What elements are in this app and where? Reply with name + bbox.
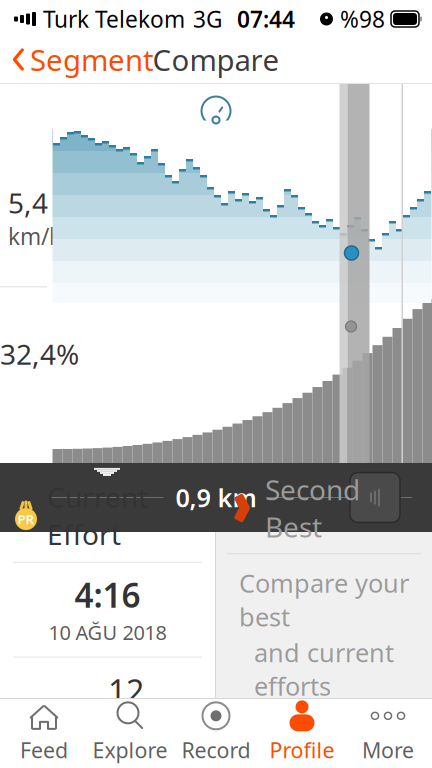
staticText: Feed — [20, 736, 68, 764]
staticText: 3G — [193, 4, 223, 34]
button[interactable]: Segment — [0, 32, 154, 87]
staticText: bpm — [41, 705, 87, 733]
staticText: 4:16 — [74, 573, 140, 617]
staticText: Explore — [92, 736, 167, 764]
staticText: 32,4% — [0, 335, 79, 372]
staticText: 5,4 — [8, 184, 48, 221]
staticText: More — [362, 736, 414, 764]
button[interactable]: Explore — [87, 699, 173, 766]
staticText: 07:44 — [237, 4, 295, 34]
button[interactable]: More — [345, 699, 431, 766]
staticText: km/h — [8, 221, 63, 251]
staticText: km/h — [154, 698, 193, 755]
staticText: Turk Telekom — [43, 4, 185, 34]
button[interactable]: PR — [0, 532, 215, 698]
staticText: Compare — [152, 40, 279, 79]
button[interactable]: Profile — [259, 699, 345, 766]
staticText: Compare your best — [239, 566, 409, 633]
staticText: and current efforts — [254, 635, 394, 703]
staticText: Record — [181, 736, 250, 764]
staticText: 0 — [22, 691, 40, 733]
staticText: Second Best — [265, 471, 360, 545]
staticText: 0,9 km — [175, 481, 256, 514]
button[interactable]: Second Best — [216, 532, 432, 698]
staticText: Segment — [30, 40, 154, 79]
staticText: Current Effort — [47, 478, 148, 553]
button[interactable]: Scrubber handle — [350, 472, 432, 522]
staticText: 10 AĞU 2018 — [48, 619, 166, 646]
staticText: %98 — [340, 4, 385, 34]
staticText: PR — [17, 510, 34, 528]
button[interactable]: Feed — [1, 699, 87, 766]
staticText: Upgrade — [270, 729, 377, 764]
button[interactable]: Record — [173, 699, 259, 766]
staticText: 12,9 — [108, 670, 153, 755]
staticText: Profile — [269, 736, 334, 764]
